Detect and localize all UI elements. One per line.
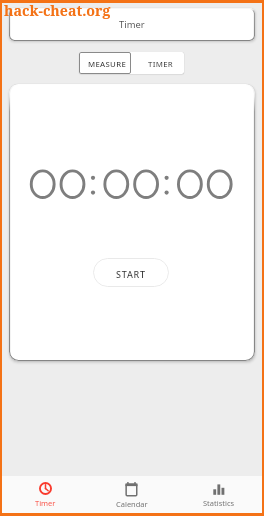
button[interactable]: MEASURE — [79, 52, 131, 74]
button[interactable]: START — [93, 258, 169, 287]
button[interactable]: Timer — [2, 476, 88, 513]
staticText: START — [116, 268, 146, 280]
staticText: TIMER — [148, 59, 174, 70]
button[interactable]: TIMER — [131, 52, 184, 74]
button[interactable]: Calendar — [88, 476, 175, 513]
staticText: Timer — [119, 18, 145, 31]
staticText: Statistics — [203, 498, 235, 508]
staticText: MEASURE — [88, 59, 127, 70]
staticText: Calendar — [116, 499, 148, 509]
button[interactable]: Statistics — [175, 476, 262, 513]
staticText: hack-cheat.org — [4, 1, 111, 20]
staticText: Timer — [35, 498, 56, 508]
